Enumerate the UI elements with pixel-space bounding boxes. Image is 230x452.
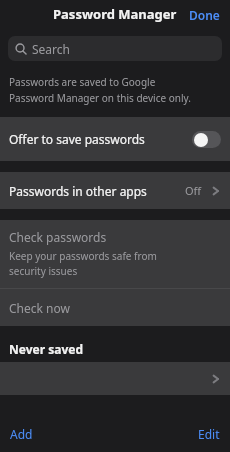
staticText: Keep your passwords safe from security i…	[9, 249, 157, 278]
button[interactable]: Check now	[0, 289, 230, 326]
button[interactable]: Add	[0, 420, 43, 448]
button[interactable]: Search	[8, 36, 222, 61]
staticText: Edit	[198, 426, 220, 442]
staticText: Add	[10, 426, 33, 442]
button[interactable]: Passwords in other apps	[0, 172, 230, 209]
button[interactable]: Offer to save passwords	[0, 117, 230, 161]
button[interactable]: Edit	[188, 420, 230, 448]
button[interactable]: Never saved entry	[0, 362, 230, 395]
staticText: Password Manager	[53, 5, 177, 23]
staticText: Off	[185, 183, 202, 198]
staticText: Done	[189, 7, 220, 23]
staticText: Offer to save passwords	[9, 131, 192, 147]
staticText: Never saved	[9, 341, 83, 357]
staticText: Passwords are saved to Google Password M…	[9, 75, 191, 104]
staticText: Check now	[9, 300, 70, 316]
button[interactable]: Check passwords	[0, 220, 230, 288]
other: Offer to save passwords toggle	[192, 131, 221, 148]
button[interactable]: Done	[179, 3, 230, 27]
staticText: Check passwords	[9, 229, 107, 245]
staticText: Passwords in other apps	[9, 183, 185, 199]
staticText: Search	[32, 41, 70, 57]
